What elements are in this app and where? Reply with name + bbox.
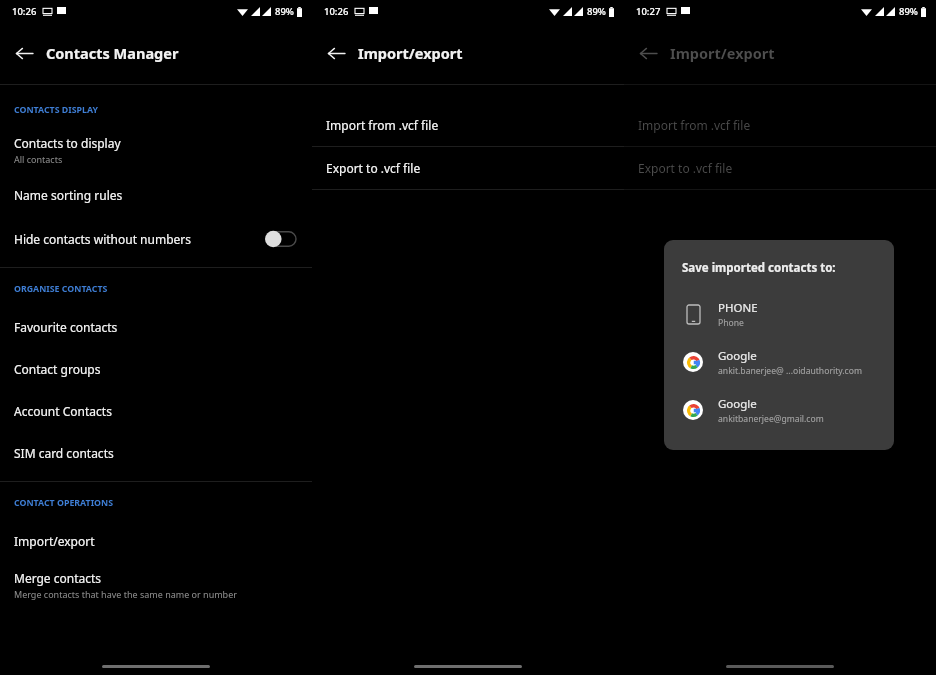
staticText: Import from .vcf file [326,117,439,133]
button[interactable]: Google [664,338,894,386]
staticText: Contact groups [14,361,101,377]
button[interactable]: Back [8,37,40,69]
staticText: Merge contacts that have the same name o… [14,588,237,600]
button[interactable]: Account Contacts [0,390,312,432]
button[interactable]: Hide contacts without numbers [0,217,312,261]
button[interactable]: Merge contacts [0,562,312,608]
staticText: Name sorting rules [14,187,123,203]
staticText: Import/export [670,43,775,63]
staticText: Google [718,396,757,412]
button[interactable]: Contact groups [0,348,312,390]
button[interactable]: Hide contacts without numbers toggle [264,230,296,248]
staticText: 10:27 [636,5,661,18]
staticText: Phone [718,317,744,329]
staticText: CONTACTS DISPLAY [14,104,98,116]
staticText: Export to .vcf file [638,160,733,176]
staticText: ankitbanerjee@gmail.com [718,413,824,425]
staticText: ankit.banerjee@ ...oidauthority.com [718,365,862,377]
button[interactable]: Import from .vcf file [624,104,936,146]
staticText: PHONE [718,300,758,316]
button[interactable]: Back [632,37,664,69]
button[interactable]: Import/export [0,520,312,562]
button[interactable]: Name sorting rules [0,173,312,217]
button[interactable]: Back [320,37,352,69]
staticText: 89% [899,5,918,18]
button[interactable]: Import from .vcf file [312,104,624,146]
staticText: Export to .vcf file [326,160,421,176]
button[interactable]: SIM card contacts [0,432,312,474]
staticText: All contacts [14,153,63,165]
button[interactable]: Export to .vcf file [624,147,936,189]
staticText: 89% [587,5,606,18]
staticText: ORGANISE CONTACTS [14,283,108,295]
staticText: Favourite contacts [14,319,118,335]
staticText: Import/export [358,43,463,63]
button[interactable]: Export to .vcf file [312,147,624,189]
staticText: SIM card contacts [14,445,114,461]
staticText: Import from .vcf file [638,117,751,133]
button[interactable]: Contacts to display [0,127,312,173]
staticText: Save imported contacts to: [682,260,836,276]
staticText: Contacts to display [14,135,121,151]
button[interactable]: Favourite contacts [0,306,312,348]
staticText: CONTACT OPERATIONS [14,497,114,509]
button[interactable]: Google [664,386,894,434]
staticText: 10:26 [324,5,349,18]
staticText: 10:26 [12,5,37,18]
staticText: Account Contacts [14,403,112,419]
staticText: Contacts Manager [46,43,179,63]
staticText: 89% [275,5,294,18]
staticText: Hide contacts without numbers [14,231,192,247]
staticText: Merge contacts [14,570,102,586]
staticText: Google [718,348,757,364]
button[interactable]: PHONE [664,290,894,338]
staticText: Import/export [14,533,95,549]
